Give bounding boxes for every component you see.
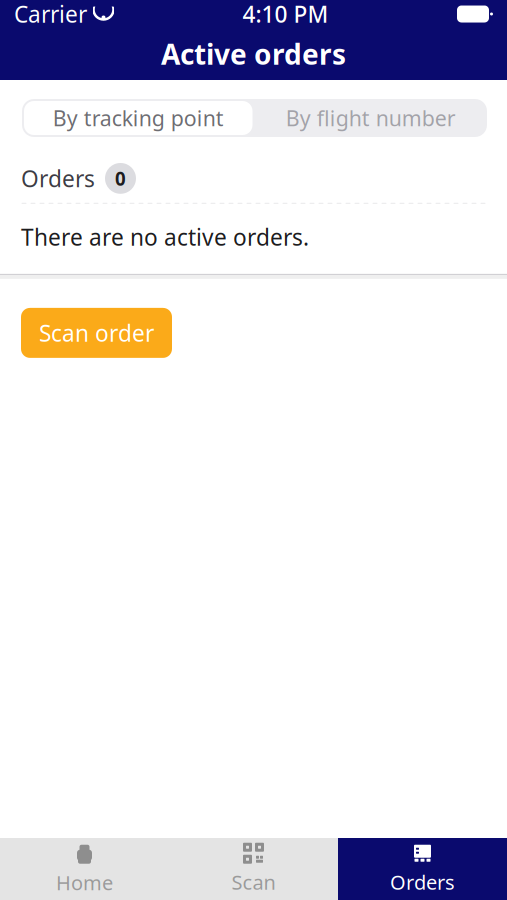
staticText: By flight number [286, 104, 456, 132]
staticText: 0 [115, 166, 126, 191]
staticText: There are no active orders. [21, 222, 309, 252]
staticText: By tracking point [53, 104, 224, 132]
button[interactable]: Scan order [21, 308, 172, 358]
button[interactable]: Orders [338, 838, 507, 900]
staticText: Active orders [161, 35, 346, 73]
button[interactable]: Scan [169, 838, 338, 900]
staticText: Scan [231, 869, 275, 895]
staticText: Home [56, 869, 113, 896]
staticText: Scan order [39, 318, 154, 348]
button[interactable]: By flight number [254, 99, 487, 137]
button[interactable]: Home [0, 838, 169, 900]
staticText: 4:10 PM [242, 0, 328, 29]
staticText: Orders [390, 869, 455, 895]
staticText: Orders [21, 163, 95, 193]
button[interactable]: By tracking point [22, 99, 254, 137]
staticText: Carrier [14, 0, 87, 29]
